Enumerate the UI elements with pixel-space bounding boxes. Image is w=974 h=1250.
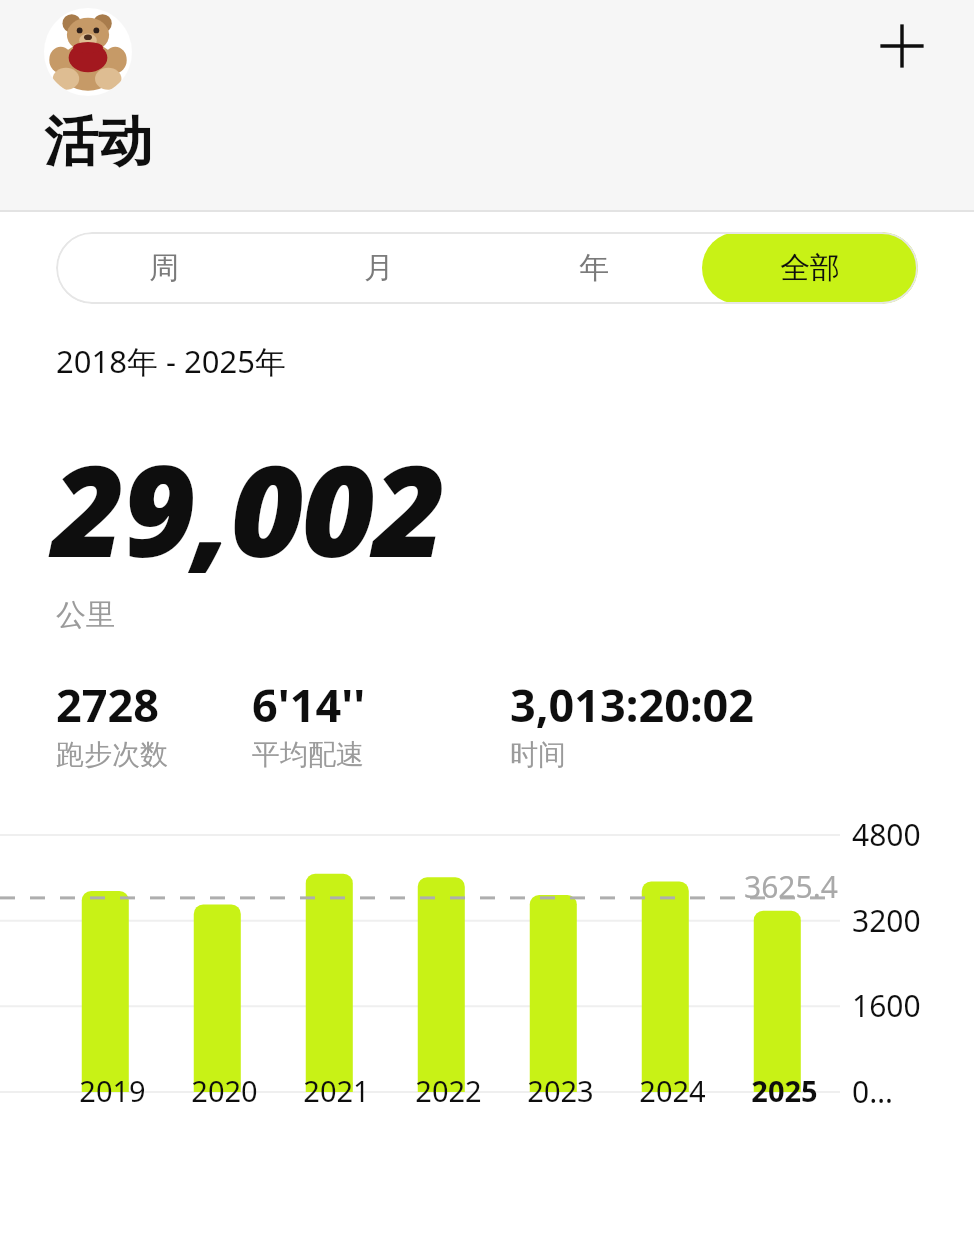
staticText: 2022 [415, 1071, 482, 1110]
staticText: 2019 [79, 1071, 146, 1110]
staticText: 2018年 - 2025年 [56, 340, 286, 382]
staticText: 平均配速 [252, 737, 364, 772]
staticText: 公里 [56, 596, 116, 634]
staticText: 6'14'' [252, 674, 366, 735]
staticText: 2025 [751, 1071, 818, 1110]
staticText: 时间 [510, 737, 566, 772]
staticText: 3625.4 [744, 866, 838, 907]
staticText: 2024 [639, 1071, 706, 1110]
staticText: 1600 [852, 985, 921, 1026]
staticText: 全部 [780, 249, 840, 287]
button[interactable]: 月 [271, 232, 486, 304]
staticText: 29,002 [52, 422, 444, 594]
staticText: 活动 [44, 108, 152, 176]
button[interactable]: Add activity [864, 8, 940, 84]
staticText: 3200 [852, 900, 921, 941]
staticText: 4800 [852, 814, 921, 855]
staticText: 2020 [191, 1071, 258, 1110]
staticText: 月 [364, 249, 394, 287]
staticText: 0… [852, 1071, 893, 1112]
staticText: 周 [149, 249, 179, 287]
staticText: 2023 [527, 1071, 594, 1110]
button[interactable]: 全部 [702, 232, 918, 304]
button[interactable]: 年 [486, 232, 702, 304]
staticText: 3,013:20:02 [510, 674, 755, 735]
staticText: 年 [579, 249, 609, 287]
staticText: 跑步次数 [56, 737, 168, 772]
button[interactable]: 周 [56, 232, 271, 304]
staticText: 2728 [56, 674, 159, 735]
staticText: 2021 [303, 1071, 370, 1110]
button[interactable]: Profile [44, 8, 132, 96]
